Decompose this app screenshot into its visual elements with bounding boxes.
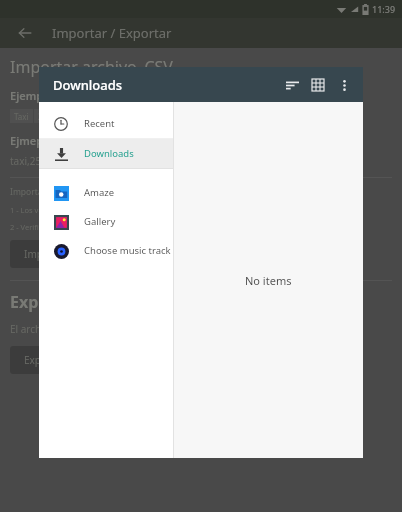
button[interactable]: Gallery [39, 207, 173, 236]
staticText: Amaze [84, 186, 115, 199]
staticText: 11:39 [372, 3, 396, 15]
button[interactable]: Back [12, 20, 38, 46]
button[interactable]: Choose music track [39, 236, 173, 265]
staticText: Ejmeplo texto plano [10, 133, 118, 148]
staticText: Gallery [84, 215, 116, 228]
staticText: Importar [24, 247, 67, 261]
staticText: No items [245, 273, 292, 288]
staticText: taxi,250,12/05/2021 [10, 154, 103, 168]
staticText: Importante: [10, 186, 58, 198]
button[interactable]: Amaze [39, 178, 173, 207]
staticText: Recent [84, 117, 115, 130]
staticText: Exportar [24, 353, 65, 367]
staticText: 250 [38, 111, 52, 122]
staticText: 2 - Verifique el formato de fecha [10, 222, 123, 232]
button[interactable]: Importar [10, 240, 81, 268]
staticText: Taxi [14, 111, 29, 122]
staticText: Downloads [84, 147, 134, 160]
staticText: 12/05 [61, 111, 83, 122]
staticText: Downloads [53, 76, 123, 94]
staticText: Ejemplo archivo .CSV [10, 88, 121, 103]
button[interactable]: Downloads [39, 139, 173, 168]
staticText: 1 - Los valores deben estar separados po… [10, 205, 182, 215]
button[interactable]: Exportar [10, 346, 79, 374]
staticText: Importar / Exportar [52, 24, 172, 42]
staticText: El archivo se guardará en Descargas [10, 322, 180, 336]
staticText: Importar archivo .CSV [10, 56, 173, 78]
button[interactable]: Grid view [305, 72, 331, 98]
button[interactable]: More options [331, 72, 357, 98]
staticText: Exportar [10, 291, 80, 313]
button[interactable]: Recent [39, 109, 173, 138]
button[interactable]: Sort [279, 72, 305, 98]
staticText: Choose music track [84, 244, 171, 257]
